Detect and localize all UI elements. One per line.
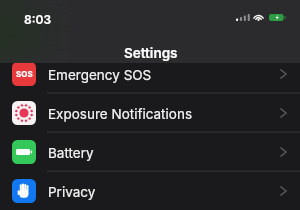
staticText: Privacy [48,184,96,200]
other: Open Privacy [280,186,287,196]
button[interactable]: Exposure Notifications [0,93,300,132]
button[interactable]: Privacy [0,171,300,210]
staticText: Battery [48,145,94,161]
button[interactable]: SOS [0,54,300,93]
staticText: Emergency SOS [48,67,152,83]
button[interactable]: Battery [0,132,300,171]
other: Open Emergency SOS [280,69,287,79]
staticText: Exposure Notifications [48,106,193,122]
staticText: SOS [16,69,33,79]
staticText: Settings [124,45,178,61]
other: Open Battery [280,147,287,157]
other: Open Exposure Notifications [280,108,287,118]
staticText: 8:03 [24,12,52,27]
